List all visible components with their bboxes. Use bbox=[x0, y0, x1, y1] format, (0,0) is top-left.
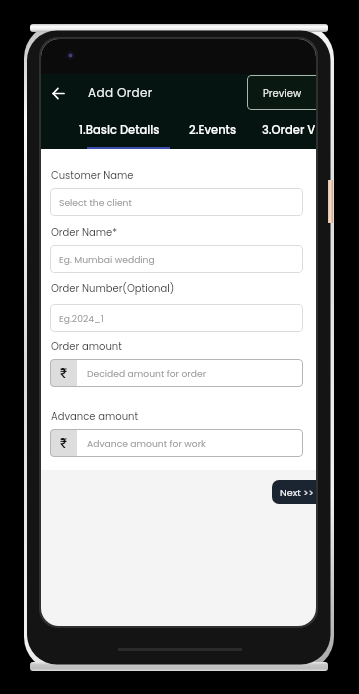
button[interactable]: 3.Order V bbox=[256, 119, 316, 149]
staticText: Add Order bbox=[88, 84, 153, 101]
staticText: 3.Order V bbox=[262, 122, 316, 138]
button[interactable]: Select the client bbox=[50, 188, 303, 216]
staticText: Preview bbox=[263, 86, 302, 100]
staticText: 2.Events bbox=[189, 122, 237, 138]
button[interactable]: Next >> bbox=[272, 480, 316, 504]
staticText: Customer Name bbox=[51, 168, 134, 182]
staticText: Order amount bbox=[51, 339, 122, 353]
staticText: Advance amount bbox=[51, 409, 139, 423]
staticText: 1.Basic Details bbox=[79, 122, 160, 138]
staticText: Advance amount for work bbox=[87, 437, 206, 450]
staticText: Eg. Mumbai wedding bbox=[59, 253, 155, 266]
staticText: Order Name* bbox=[51, 225, 118, 239]
button[interactable]: Preview bbox=[247, 75, 316, 110]
button[interactable]: Decided amount for order bbox=[77, 359, 303, 387]
button[interactable]: Eg.2024_1 bbox=[50, 304, 303, 332]
staticText: ₹ bbox=[60, 435, 68, 451]
button[interactable]: Advance amount for work bbox=[77, 429, 303, 457]
staticText: Order Number(Optional) bbox=[51, 281, 175, 295]
button[interactable]: Eg. Mumbai wedding bbox=[50, 245, 303, 273]
staticText: ₹ bbox=[60, 365, 68, 381]
staticText: Next >> bbox=[280, 486, 314, 499]
button[interactable]: Back bbox=[45, 79, 71, 107]
button[interactable]: 2.Events bbox=[183, 119, 251, 149]
staticText: Eg.2024_1 bbox=[59, 312, 104, 325]
staticText: Decided amount for order bbox=[87, 367, 207, 380]
staticText: Select the client bbox=[59, 196, 132, 209]
button[interactable]: 1.Basic Details bbox=[73, 119, 168, 149]
